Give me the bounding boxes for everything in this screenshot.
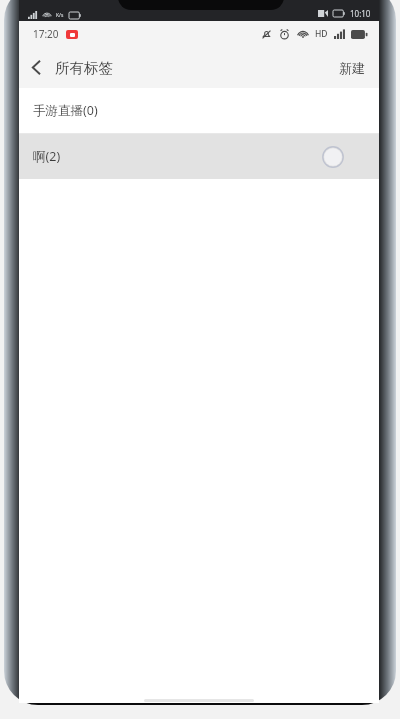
button[interactable]: Back	[19, 51, 50, 84]
staticText: 所有标签	[55, 59, 113, 77]
staticText: 10:10	[350, 8, 371, 19]
staticText: 17:20	[33, 27, 59, 41]
staticText: 手游直播(0)	[33, 102, 98, 119]
staticText: 啊(2)	[33, 148, 61, 165]
staticText: K/s	[56, 12, 64, 19]
staticText: 新建	[339, 60, 365, 76]
staticText: HD	[315, 28, 328, 40]
button[interactable]: 手游直播(0)	[19, 88, 379, 133]
button[interactable]: 啊(2)	[19, 134, 379, 179]
button[interactable]: 新建	[325, 50, 379, 86]
